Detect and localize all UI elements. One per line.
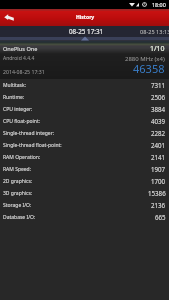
staticText: Runtime: — [3, 94, 25, 101]
button[interactable]: CPU integer: — [0, 103, 169, 115]
staticText: 2136 — [151, 201, 166, 209]
staticText: CPU float-point: — [3, 118, 41, 125]
staticText: 2401 — [151, 141, 166, 149]
staticText: 2506 — [151, 93, 166, 101]
staticText: History — [76, 14, 95, 21]
button[interactable]: RAM Speed: — [0, 163, 169, 175]
staticText: 08-25 13:13 — [140, 28, 169, 36]
staticText: 1907 — [151, 165, 166, 173]
button[interactable]: Multitask: — [0, 79, 169, 91]
button[interactable]: RAM Operation: — [0, 151, 169, 163]
button[interactable]: Back — [0, 9, 17, 26]
staticText: 15386 — [148, 189, 166, 197]
staticText: 3884 — [151, 105, 166, 113]
staticText: 2282 — [151, 129, 166, 137]
staticText: 2014-08-25 17:31 — [3, 68, 45, 75]
staticText: 7311 — [151, 81, 166, 89]
staticText: 3D graphics: — [3, 190, 33, 197]
button[interactable]: Runtime: — [0, 91, 169, 103]
staticText: 2141 — [151, 153, 166, 161]
button[interactable]: 2D graphics: — [0, 175, 169, 187]
staticText: 46358 — [133, 61, 165, 75]
staticText: Android 4.4.4 — [3, 55, 35, 62]
button[interactable]: 3D graphics: — [0, 187, 169, 199]
button[interactable]: 08-25 13:13 — [120, 26, 169, 37]
staticText: 665 — [155, 213, 166, 221]
staticText: Storage I/O: — [3, 202, 32, 209]
staticText: 1700 — [151, 177, 166, 185]
button[interactable]: Database I/O: — [0, 211, 169, 223]
staticText: 2D graphics: — [3, 178, 33, 185]
staticText: CPU integer: — [3, 106, 33, 113]
staticText: Multitask: — [3, 82, 27, 89]
staticText: Single-thread float-point: — [3, 142, 62, 149]
staticText: Database I/O: — [3, 214, 36, 221]
button[interactable]: CPU float-point: — [0, 115, 169, 127]
staticText: RAM Speed: — [3, 166, 32, 173]
staticText: OnePlus One — [3, 45, 38, 53]
button[interactable]: 08-25 17:31 — [52, 26, 120, 37]
button[interactable]: Single-thread integer: — [0, 127, 169, 139]
staticText: 2880 MHz (x4) — [125, 55, 165, 63]
staticText: RAM Operation: — [3, 154, 41, 161]
staticText: 1/10 — [150, 44, 165, 54]
staticText: 08-25 17:31 — [69, 27, 104, 36]
button[interactable]: Storage I/O: — [0, 199, 169, 211]
button[interactable]: Single-thread float-point: — [0, 139, 169, 151]
staticText: 18:00 — [152, 1, 166, 8]
staticText: Single-thread integer: — [3, 130, 55, 137]
staticText: 4039 — [151, 117, 166, 125]
